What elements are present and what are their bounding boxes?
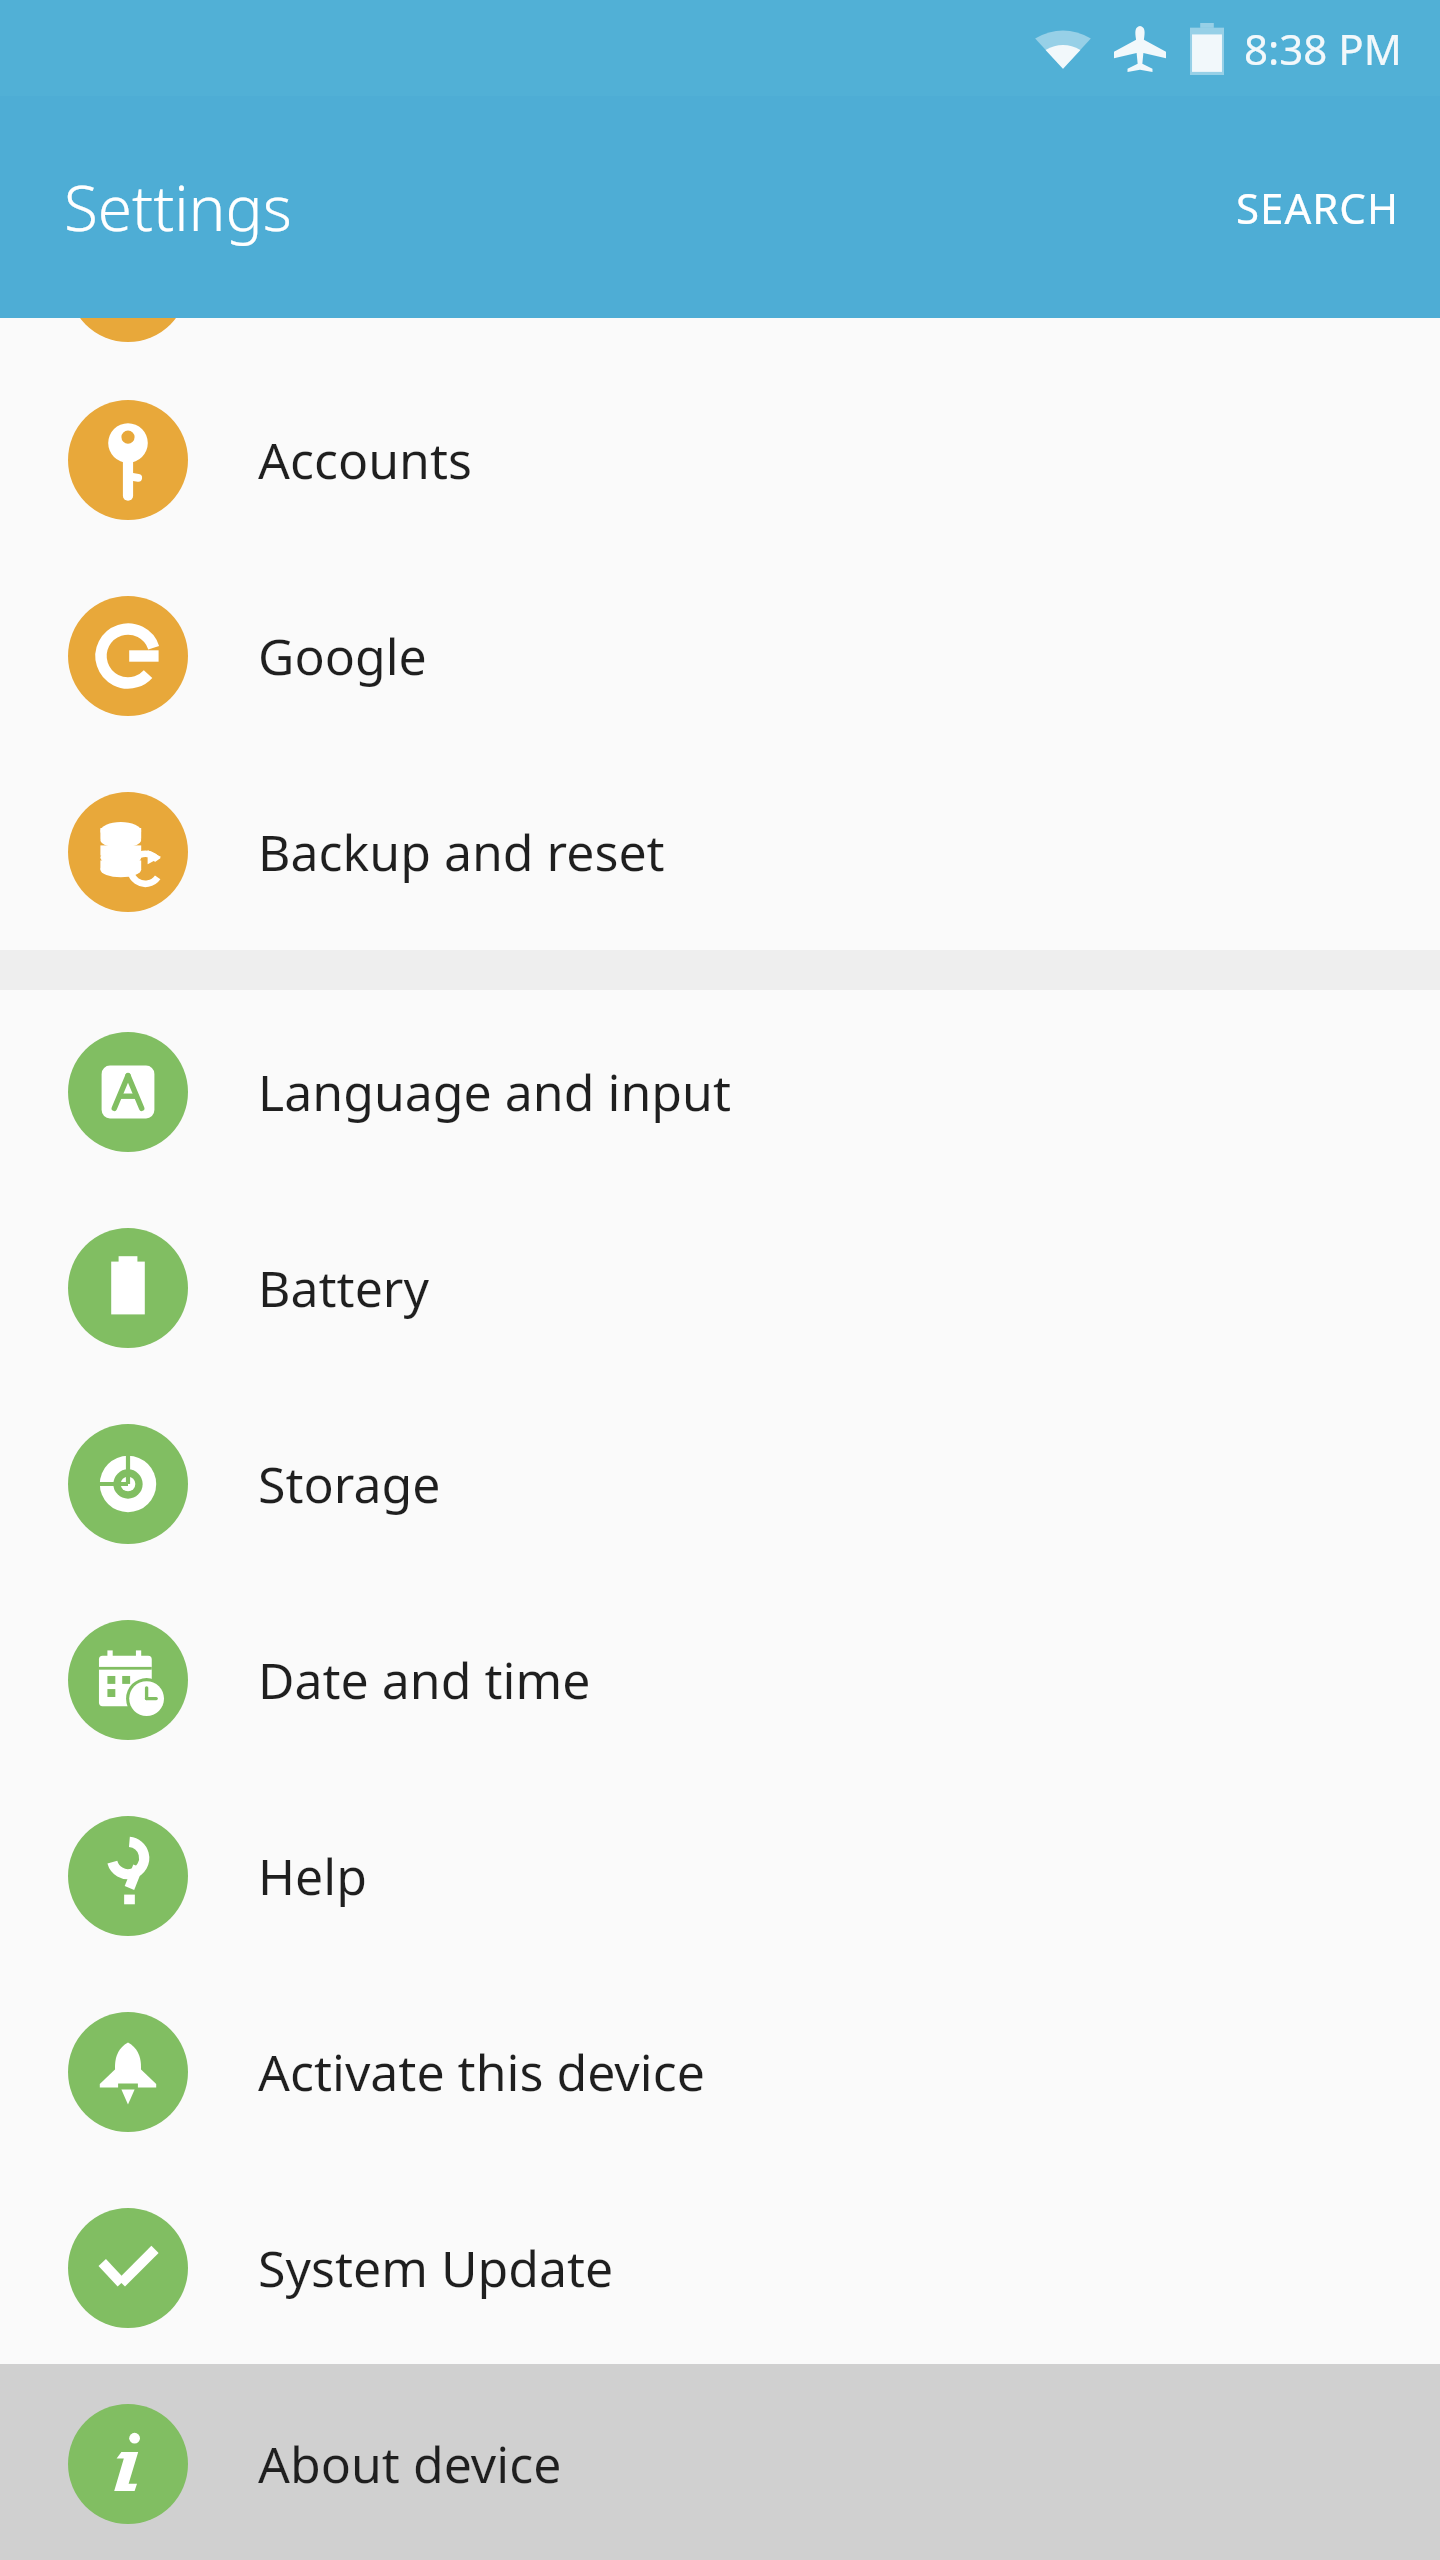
staticText: 8:38 PM [1244, 20, 1402, 77]
button[interactable]: Language and input [0, 994, 1440, 1190]
button[interactable]: System Update [0, 2170, 1440, 2366]
staticText: Backup and reset [258, 818, 665, 886]
button[interactable]: Storage [0, 1386, 1440, 1582]
button[interactable]: Activate this device [0, 1974, 1440, 2170]
staticText: Battery [258, 1254, 429, 1322]
button[interactable]: About device [0, 2366, 1440, 2560]
staticText: Accounts [258, 426, 472, 494]
staticText: Settings [64, 165, 292, 249]
button[interactable]: Accounts [0, 362, 1440, 558]
button[interactable]: Battery [0, 1190, 1440, 1386]
staticText: SEARCH [1236, 179, 1400, 236]
staticText: Google [258, 622, 427, 690]
button[interactable]: Backup and reset [0, 754, 1440, 950]
button[interactable]: Google [0, 558, 1440, 754]
staticText: Language and input [258, 1058, 731, 1126]
staticText: Help [258, 1842, 367, 1910]
staticText: Storage [258, 1450, 441, 1518]
staticText: System Update [258, 2234, 614, 2302]
button[interactable]: Help [0, 1778, 1440, 1974]
button[interactable]: Date and time [0, 1582, 1440, 1778]
staticText: About device [258, 2430, 562, 2498]
staticText: Date and time [258, 1646, 591, 1714]
button[interactable]: SEARCH [1196, 155, 1440, 260]
staticText: Activate this device [258, 2038, 705, 2106]
